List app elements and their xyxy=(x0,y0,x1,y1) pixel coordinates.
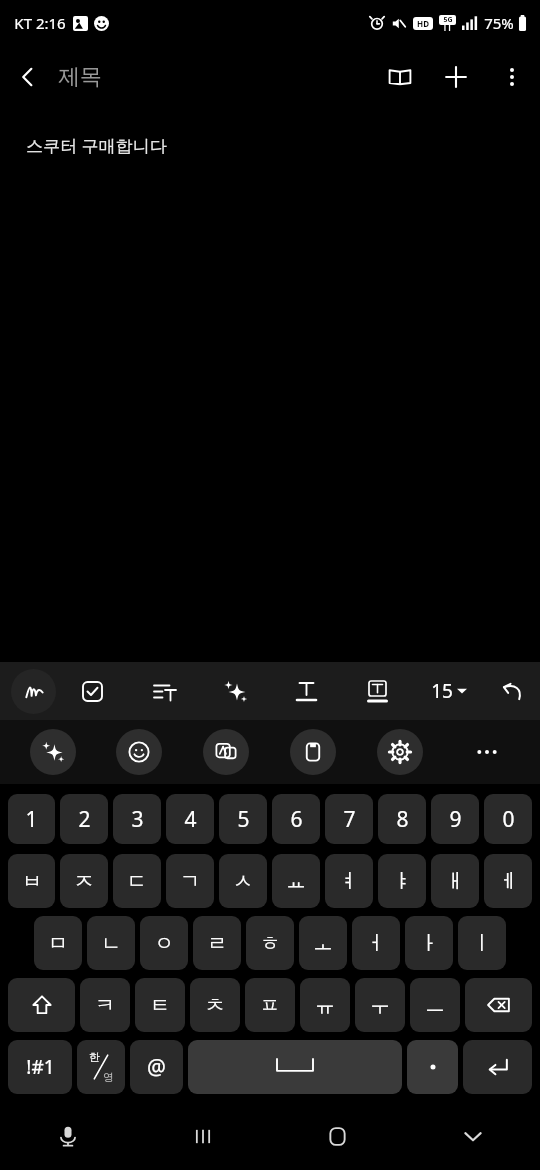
button[interactable]: 3 xyxy=(113,794,161,844)
staticText: 5G xyxy=(443,15,453,25)
button[interactable]: ㅁ xyxy=(34,916,82,970)
staticText: ㄷ xyxy=(127,869,147,894)
button[interactable]: ㅈ xyxy=(60,854,108,908)
staticText: ㅁ xyxy=(48,931,68,956)
staticText: @ xyxy=(147,1053,166,1082)
button[interactable]: Paragraph style xyxy=(128,662,200,720)
staticText: ㅋ xyxy=(95,993,115,1018)
staticText: ㅍ xyxy=(260,993,280,1018)
staticText: 4 xyxy=(184,805,197,834)
staticText: ㅈ xyxy=(74,869,94,894)
staticText: ㅏ xyxy=(419,931,439,956)
button[interactable]: ㅐ xyxy=(431,854,479,908)
button[interactable]: ㅇ xyxy=(140,916,188,970)
button[interactable]: ㅍ xyxy=(245,978,295,1032)
staticText: ㅎ xyxy=(260,931,280,956)
button[interactable]: ㅠ xyxy=(300,978,350,1032)
button[interactable]: ㅋ xyxy=(80,978,130,1032)
button[interactable]: Clipboard xyxy=(290,729,336,775)
button[interactable]: ㅗ xyxy=(299,916,347,970)
staticText: 7 xyxy=(343,805,356,834)
button[interactable]: ㅊ xyxy=(190,978,240,1032)
staticText: ㅜ xyxy=(370,993,390,1018)
staticText: 영 xyxy=(103,1070,114,1084)
button[interactable]: 5 xyxy=(219,794,267,844)
button[interactable]: ㅅ xyxy=(219,854,267,908)
button[interactable]: Reading mode xyxy=(372,49,428,105)
button[interactable]: Recents xyxy=(135,1102,270,1170)
button[interactable]: AI xyxy=(30,729,76,775)
button[interactable]: ㅎ xyxy=(246,916,294,970)
button[interactable] xyxy=(463,1040,532,1094)
button[interactable]: 4 xyxy=(166,794,214,844)
button[interactable]: 한 xyxy=(77,1040,125,1094)
button[interactable]: ㅡ xyxy=(410,978,460,1032)
staticText: HD xyxy=(417,18,429,29)
button[interactable]: 6 xyxy=(272,794,320,844)
staticText: 15 xyxy=(431,678,453,704)
button[interactable]: ㅣ xyxy=(458,916,506,970)
staticText: ㄹ xyxy=(207,931,227,956)
button[interactable]: Hide keyboard xyxy=(405,1102,540,1170)
button[interactable]: 1 xyxy=(8,794,55,844)
button[interactable]: 2 xyxy=(60,794,108,844)
staticText: ㅓ xyxy=(366,931,386,956)
button[interactable]: ㅔ xyxy=(484,854,532,908)
button[interactable]: ㄹ xyxy=(193,916,241,970)
button[interactable]: ㅕ xyxy=(325,854,373,908)
button[interactable]: ㅌ xyxy=(135,978,185,1032)
staticText: ㅂ xyxy=(22,869,42,894)
button[interactable]: 15 xyxy=(413,662,484,720)
button[interactable]: Undo xyxy=(484,662,540,720)
button[interactable]: ㅜ xyxy=(355,978,405,1032)
staticText: KT 2:16 xyxy=(14,13,66,33)
button[interactable]: Emoji xyxy=(116,729,162,775)
button[interactable]: ㅑ xyxy=(378,854,426,908)
button[interactable]: 9 xyxy=(431,794,479,844)
button[interactable] xyxy=(407,1040,458,1094)
button[interactable]: 0 xyxy=(484,794,532,844)
button[interactable]: !#1 xyxy=(8,1040,72,1094)
staticText: 5 xyxy=(237,805,250,834)
button[interactable]: @ xyxy=(130,1040,183,1094)
button[interactable] xyxy=(8,978,75,1032)
button[interactable]: ㅛ xyxy=(272,854,320,908)
button[interactable]: Back xyxy=(0,49,56,105)
staticText: ㅛ xyxy=(286,869,306,894)
button[interactable]: ㄴ xyxy=(87,916,135,970)
button[interactable]: Home xyxy=(270,1102,405,1170)
staticText: 9 xyxy=(449,805,462,834)
button[interactable]: Add xyxy=(428,49,484,105)
staticText: ㅡ xyxy=(425,993,445,1018)
button[interactable]: More xyxy=(443,720,530,784)
staticText: 1 xyxy=(25,805,38,834)
staticText: 2 xyxy=(78,805,91,834)
button[interactable]: AI assist xyxy=(200,662,271,720)
button[interactable]: Handwriting xyxy=(11,669,56,714)
button[interactable]: Text color xyxy=(271,662,342,720)
button[interactable]: ㅂ xyxy=(8,854,55,908)
button[interactable]: 7 xyxy=(325,794,373,844)
staticText: 제목 xyxy=(58,63,102,91)
staticText: 한 xyxy=(89,1050,100,1064)
button[interactable]: ㄷ xyxy=(113,854,161,908)
staticText: ㅌ xyxy=(150,993,170,1018)
button[interactable]: Voice input xyxy=(0,1102,135,1170)
staticText: ㅅ xyxy=(233,869,253,894)
button[interactable]: ㄱ xyxy=(166,854,214,908)
button[interactable]: ㅓ xyxy=(352,916,400,970)
button[interactable]: More options xyxy=(484,49,540,105)
button[interactable]: ㅏ xyxy=(405,916,453,970)
button[interactable]: Highlight xyxy=(342,662,413,720)
staticText: ㅔ xyxy=(498,869,518,894)
staticText: 8 xyxy=(396,805,409,834)
button[interactable]: Checklist xyxy=(56,662,128,720)
staticText: !#1 xyxy=(26,1054,55,1080)
button[interactable]: Settings xyxy=(377,729,423,775)
button[interactable]: 8 xyxy=(378,794,426,844)
button[interactable]: Translate xyxy=(203,729,249,775)
button[interactable] xyxy=(465,978,532,1032)
staticText: ㅠ xyxy=(315,993,335,1018)
staticText: 3 xyxy=(131,805,144,834)
button[interactable] xyxy=(188,1040,402,1094)
